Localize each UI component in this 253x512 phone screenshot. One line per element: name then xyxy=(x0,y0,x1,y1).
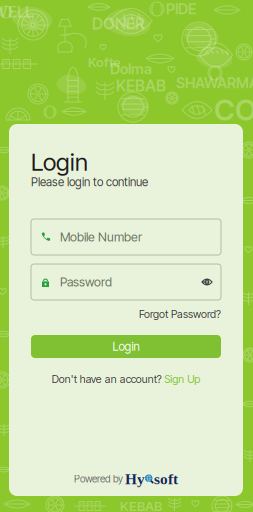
button[interactable]: Sign Up xyxy=(164,372,200,385)
staticText: soft xyxy=(154,470,178,487)
staticText: DONER xyxy=(92,14,145,33)
staticText: Please login to continue xyxy=(31,175,148,189)
staticText: Forgot Password? xyxy=(139,307,221,320)
staticText: SHAWARMA xyxy=(176,74,253,92)
staticText: KEBAB xyxy=(116,76,166,95)
staticText: Sign Up xyxy=(164,372,200,385)
staticText: WELL xyxy=(0,2,33,21)
staticText: Hy xyxy=(125,470,145,487)
staticText: Powered by xyxy=(74,473,125,485)
staticText: Mobile Number xyxy=(60,229,142,244)
button[interactable]: Forgot Password? xyxy=(31,307,221,321)
staticText: Don't have an account? xyxy=(52,372,162,385)
staticText: KEBAB xyxy=(120,498,162,512)
staticText: Login xyxy=(112,339,139,354)
staticText: Login xyxy=(31,147,88,176)
button[interactable]: Show password xyxy=(198,273,216,291)
staticText: Password xyxy=(60,274,112,289)
staticText: CO xyxy=(214,92,253,127)
button[interactable]: Login xyxy=(31,335,221,358)
staticText: Dolma xyxy=(110,60,152,78)
staticText: PIDE xyxy=(166,0,196,18)
staticText: Kofte xyxy=(88,54,120,70)
